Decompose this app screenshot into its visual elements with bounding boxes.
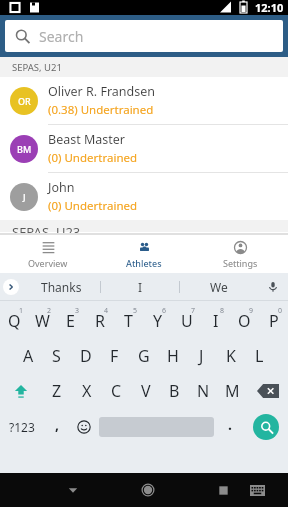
staticText: Search (39, 27, 84, 46)
button[interactable]: ?123 (0, 408, 44, 446)
staticText: SEPAS, U23 (12, 223, 81, 235)
button[interactable]: L (245, 338, 274, 373)
staticText: L (255, 345, 264, 367)
button[interactable]: H (158, 338, 187, 373)
button[interactable]: O (230, 303, 259, 338)
button[interactable]: OR (0, 77, 288, 124)
staticText: (0) Undertrained (48, 150, 138, 166)
staticText: (0) Undertrained (48, 198, 138, 214)
button[interactable]: , (44, 408, 70, 446)
button[interactable]: Overview (0, 235, 96, 273)
staticText: M (225, 380, 240, 402)
staticText: B (169, 380, 180, 402)
staticText: J (199, 345, 204, 367)
staticText: 12:10 (255, 0, 284, 15)
button[interactable]: Back (56, 473, 90, 507)
button[interactable]: Recents (206, 473, 240, 507)
button[interactable]: C (102, 373, 131, 408)
staticText: OR (18, 95, 31, 107)
button[interactable]: J (0, 173, 288, 220)
staticText: O (238, 310, 251, 332)
button[interactable]: Z (42, 373, 72, 408)
staticText: Oliver R. Frandsen (48, 83, 155, 100)
staticText: Overview (28, 257, 68, 269)
button[interactable]: Y (143, 303, 172, 338)
staticText: (0.38) Undertrained (48, 102, 154, 118)
button[interactable]: I (201, 303, 230, 338)
staticText: Athletes (126, 257, 162, 269)
staticText: 8 (220, 306, 225, 316)
staticText: J (23, 191, 26, 203)
staticText: F (110, 345, 119, 367)
staticText: R (95, 310, 105, 332)
staticText: 6 (162, 306, 167, 316)
staticText: John (48, 179, 75, 196)
button[interactable]: More suggestions (0, 273, 22, 301)
button[interactable]: E (56, 303, 85, 338)
button[interactable]: G (129, 338, 158, 373)
button[interactable]: V (131, 373, 160, 408)
staticText: A (23, 345, 34, 367)
button[interactable]: N (189, 373, 218, 408)
staticText: BM (17, 143, 32, 155)
staticText: Y (153, 310, 163, 332)
button[interactable]: Backspace (247, 373, 288, 408)
button[interactable]: Thanks (22, 273, 100, 301)
staticText: I (213, 310, 219, 332)
button[interactable]: Shift (0, 373, 42, 408)
button[interactable]: Settings (192, 235, 288, 273)
button[interactable]: M (218, 373, 247, 408)
button[interactable]: We (180, 273, 258, 301)
staticText: W (35, 310, 50, 332)
staticText: 7 (191, 306, 196, 316)
staticText: Thanks (41, 279, 82, 295)
button[interactable]: D (71, 338, 100, 373)
button[interactable]: P (259, 303, 288, 338)
staticText: SEPAS, U21 (12, 61, 62, 74)
staticText: 1 (19, 306, 24, 316)
staticText: G (138, 345, 150, 367)
button[interactable]: Athletes (96, 235, 192, 273)
staticText: , (55, 415, 59, 434)
staticText: X (82, 380, 92, 402)
staticText: K (226, 345, 236, 367)
button[interactable]: . (216, 408, 243, 446)
staticText: C (111, 380, 122, 402)
button[interactable]: X (72, 373, 102, 408)
button[interactable]: B (160, 373, 189, 408)
button[interactable]: I (101, 273, 179, 301)
button[interactable]: Search (243, 408, 288, 446)
staticText: 3 (75, 306, 80, 316)
staticText: U (181, 310, 193, 332)
button[interactable]: T (114, 303, 143, 338)
staticText: S (52, 345, 61, 367)
staticText: Q (8, 310, 21, 332)
button[interactable]: W (28, 303, 56, 338)
button[interactable]: Q (0, 303, 28, 338)
button[interactable]: A (14, 338, 42, 373)
button[interactable]: Home (131, 473, 165, 507)
button[interactable]: S (42, 338, 71, 373)
button[interactable]: R (85, 303, 114, 338)
button[interactable]: Voice input (258, 273, 288, 301)
staticText: V (141, 380, 151, 402)
staticText: N (197, 380, 210, 402)
staticText: 0 (278, 306, 283, 316)
staticText: 9 (249, 306, 254, 316)
button[interactable]: Switch keyboard (240, 473, 274, 507)
button[interactable]: U (172, 303, 201, 338)
staticText: E (66, 310, 75, 332)
staticText: Settings (223, 257, 258, 269)
staticText: Beast Master (48, 131, 126, 148)
staticText: We (210, 279, 228, 295)
button[interactable]: BM (0, 125, 288, 172)
button[interactable]: F (100, 338, 129, 373)
button[interactable]: Search (5, 20, 283, 52)
staticText: . (228, 415, 232, 434)
button[interactable]: J (187, 338, 216, 373)
staticText: T (124, 310, 133, 332)
staticText: ?123 (9, 419, 35, 435)
button[interactable]: K (216, 338, 245, 373)
button[interactable]: Emoji (70, 408, 97, 446)
